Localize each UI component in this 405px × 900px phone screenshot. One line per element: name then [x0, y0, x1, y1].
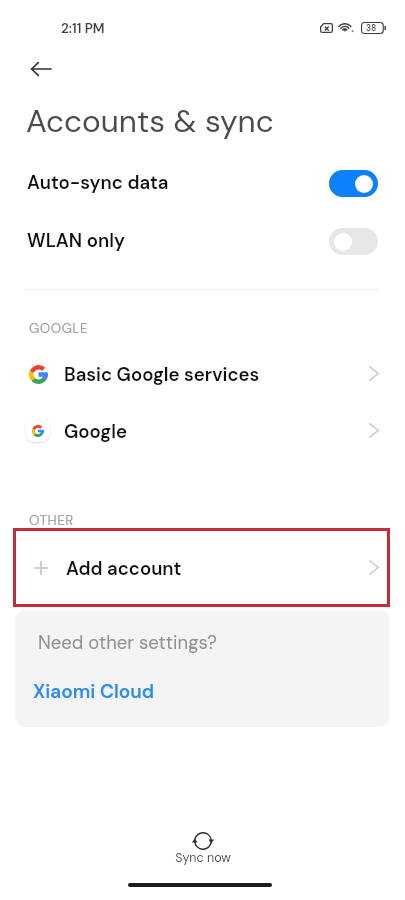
button[interactable]: Sync now [160, 827, 245, 873]
button[interactable]: Google [0, 409, 405, 455]
button[interactable]: Switch on [329, 170, 378, 197]
button[interactable] [13, 528, 390, 607]
button[interactable]: Back [21, 51, 61, 87]
button[interactable]: WLAN only [0, 218, 405, 264]
staticText: 2:11 PM [61, 20, 105, 38]
button[interactable]: Auto-sync data [0, 160, 405, 206]
staticText: OTHER [29, 512, 74, 530]
staticText: Add account [66, 557, 182, 581]
staticText: Basic Google services [64, 363, 260, 387]
staticText: Accounts & sync [26, 101, 274, 142]
staticText: Google [64, 420, 127, 444]
staticText: Sync now [175, 850, 231, 866]
staticText: 38 [366, 23, 377, 34]
button[interactable]: Switch off [329, 228, 378, 255]
button[interactable]: Basic Google services [0, 352, 405, 398]
staticText: Need other settings? [38, 631, 217, 655]
staticText: WLAN only [27, 229, 125, 253]
staticText: GOOGLE [29, 320, 89, 338]
button[interactable]: Xiaomi Cloud [27, 676, 160, 707]
staticText: Auto-sync data [27, 171, 169, 195]
